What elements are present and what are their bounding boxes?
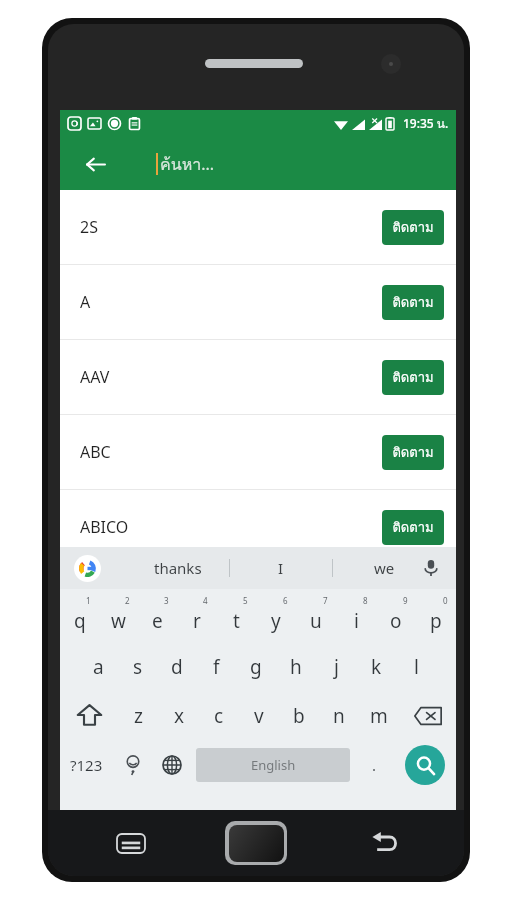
button[interactable]: Back [362, 820, 408, 866]
button[interactable]: x [159, 691, 199, 740]
staticText: 4 [203, 595, 208, 606]
button[interactable]: c [199, 691, 239, 740]
button[interactable]: z [118, 691, 159, 740]
staticText: we [374, 558, 395, 578]
staticText: j [334, 654, 339, 680]
staticText: 5 [243, 595, 248, 606]
staticText: b [293, 703, 305, 729]
button[interactable]: d [157, 642, 196, 691]
button[interactable]: ติดตาม [382, 435, 444, 470]
staticText: English [251, 756, 296, 774]
button[interactable]: v [239, 691, 279, 740]
staticText: A [80, 291, 91, 313]
button[interactable]: ติดตาม [382, 210, 444, 245]
button[interactable]: thanks [126, 547, 229, 589]
button[interactable]: p [416, 593, 456, 642]
staticText: i [354, 608, 359, 634]
button[interactable]: m [359, 691, 399, 740]
button[interactable]: I [230, 547, 332, 589]
button[interactable]: w [99, 593, 138, 642]
staticText: t [233, 608, 240, 634]
button[interactable]: Shift [60, 691, 118, 740]
staticText: q [74, 608, 86, 634]
button[interactable]: b [279, 691, 319, 740]
button[interactable]: Voice input [418, 555, 444, 581]
staticText: a [93, 654, 104, 680]
staticText: d [171, 654, 183, 680]
button[interactable]: Emoji [113, 740, 152, 790]
button[interactable]: Home [225, 821, 287, 865]
button[interactable]: g [236, 642, 276, 691]
button[interactable]: u [296, 593, 336, 642]
staticText: 19:35 น. [403, 114, 449, 133]
staticText: e [152, 608, 163, 634]
button[interactable]: Search [405, 745, 445, 785]
button[interactable]: AAV [60, 340, 456, 414]
staticText: ค้นหา... [160, 152, 215, 177]
button[interactable]: Back [78, 147, 112, 181]
staticText: 9 [403, 595, 408, 606]
button[interactable]: s [118, 642, 157, 691]
button[interactable]: ติดตาม [382, 285, 444, 320]
button[interactable]: f [196, 642, 236, 691]
button[interactable]: ค้นหา... [156, 146, 215, 182]
button[interactable]: English [196, 748, 350, 782]
button[interactable]: ABC [60, 415, 456, 489]
button[interactable]: ติดตาม [382, 360, 444, 395]
staticText: ติดตาม [392, 667, 434, 688]
button[interactable]: i [336, 593, 376, 642]
button[interactable]: Change language [152, 740, 191, 790]
button[interactable]: ?123 [60, 740, 113, 790]
staticText: thanks [154, 558, 202, 578]
staticText: 0 [443, 595, 448, 606]
staticText: k [371, 654, 382, 680]
button[interactable]: h [276, 642, 316, 691]
staticText: v [254, 703, 264, 729]
staticText: 7 [323, 595, 328, 606]
staticText: ?123 [70, 755, 103, 775]
staticText: m [370, 703, 388, 729]
staticText: w [111, 608, 126, 634]
staticText: ABC [80, 441, 111, 463]
button[interactable]: ติดตาม [382, 585, 444, 620]
button[interactable]: ACAP [60, 565, 456, 639]
button[interactable]: ACC [60, 640, 456, 714]
button[interactable]: ติดตาม [382, 510, 444, 545]
staticText: . [372, 755, 377, 775]
button[interactable]: we [333, 547, 435, 589]
button[interactable]: l [396, 642, 436, 691]
button[interactable]: r [177, 593, 216, 642]
staticText: 1 [86, 595, 91, 606]
button[interactable]: t [216, 593, 256, 642]
button[interactable]: o [376, 593, 416, 642]
staticText: 2 [125, 595, 130, 606]
staticText: o [390, 608, 402, 634]
button[interactable]: e [138, 593, 177, 642]
button[interactable]: A [60, 265, 456, 339]
staticText: h [290, 654, 302, 680]
staticText: I [278, 558, 284, 578]
staticText: p [430, 608, 442, 634]
staticText: x [174, 703, 185, 729]
button[interactable]: Backspace [399, 691, 456, 740]
button[interactable]: ABICO [60, 490, 456, 564]
staticText: AAV [80, 366, 110, 388]
staticText: ติดตาม [392, 217, 434, 238]
button[interactable]: j [316, 642, 356, 691]
button[interactable]: 2S [60, 190, 456, 264]
button[interactable]: n [319, 691, 359, 740]
staticText: ติดตาม [392, 292, 434, 313]
staticText: ติดตาม [392, 442, 434, 463]
button[interactable]: q [60, 593, 99, 642]
button[interactable]: y [256, 593, 296, 642]
button[interactable]: k [356, 642, 396, 691]
staticText: ACC [80, 666, 110, 688]
button[interactable]: ติดตาม [382, 660, 444, 695]
staticText: 3 [164, 595, 169, 606]
button[interactable]: Google [74, 555, 101, 582]
button[interactable]: a [79, 642, 118, 691]
button[interactable]: Recent apps [108, 820, 154, 866]
button[interactable]: . [355, 740, 394, 790]
staticText: s [133, 654, 143, 680]
staticText: ติดตาม [392, 367, 434, 388]
